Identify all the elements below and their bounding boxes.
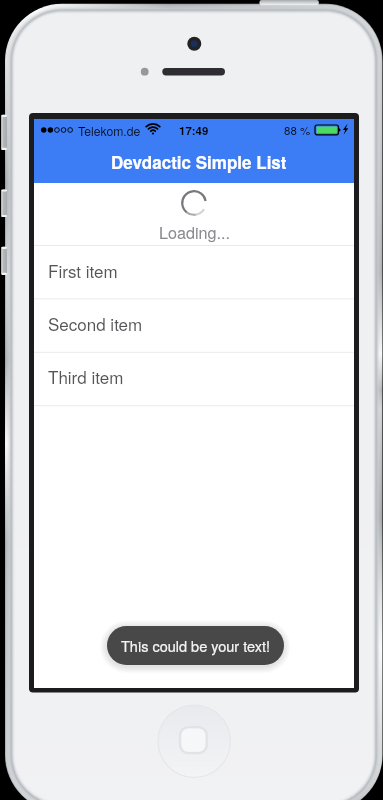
staticText: 88 % <box>284 122 311 138</box>
button[interactable]: First item <box>34 247 354 299</box>
staticText: 17:49 <box>179 122 209 138</box>
button[interactable]: Devdactic Simple List <box>34 139 354 183</box>
staticText: Loading... <box>159 220 231 243</box>
staticText: This could be your text! <box>121 635 271 656</box>
staticText: Telekom.de <box>78 122 141 139</box>
staticText: Third item <box>48 364 124 388</box>
button[interactable]: Third item <box>34 353 354 405</box>
staticText: Devdactic Simple List <box>111 150 287 174</box>
button[interactable]: This could be your text! <box>107 626 284 665</box>
staticText: First item <box>48 258 118 282</box>
staticText: Second item <box>48 311 143 335</box>
button[interactable]: Second item <box>34 300 354 352</box>
